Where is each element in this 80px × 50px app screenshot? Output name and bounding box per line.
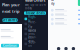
button[interactable]: Car rental — [22, 26, 48, 31]
staticText: Get started — [2, 18, 18, 22]
staticText: Experiences — [28, 29, 36, 39]
staticText: Support — [28, 40, 36, 47]
staticText: Save up to 40% today — [24, 3, 45, 10]
button[interactable]: Hotels — [22, 21, 48, 26]
staticText: Browse deals — [25, 11, 44, 15]
button[interactable]: Insurance — [22, 36, 48, 41]
staticText: Plan your — [2, 2, 20, 7]
button[interactable] — [48, 12, 80, 17]
button[interactable]: Continue — [1, 44, 19, 47]
button[interactable] — [48, 17, 80, 21]
staticText: Activity — [51, 0, 54, 5]
staticText: Continue — [3, 44, 17, 47]
button[interactable]: Experiences — [22, 31, 48, 36]
staticText: Car rental — [28, 25, 36, 32]
button[interactable] — [48, 8, 80, 12]
button[interactable]: Browse deals — [24, 11, 46, 15]
button[interactable]: Flights — [22, 16, 48, 21]
staticText: Hotels — [28, 20, 36, 27]
staticText: Flights — [28, 15, 36, 22]
staticText: next trip — [2, 9, 20, 14]
staticText: New Offers — [24, 0, 45, 3]
button[interactable] — [48, 21, 80, 26]
button[interactable]: Get started — [2, 18, 18, 22]
button[interactable]: Support — [22, 41, 48, 46]
staticText: Insurance — [28, 35, 36, 42]
